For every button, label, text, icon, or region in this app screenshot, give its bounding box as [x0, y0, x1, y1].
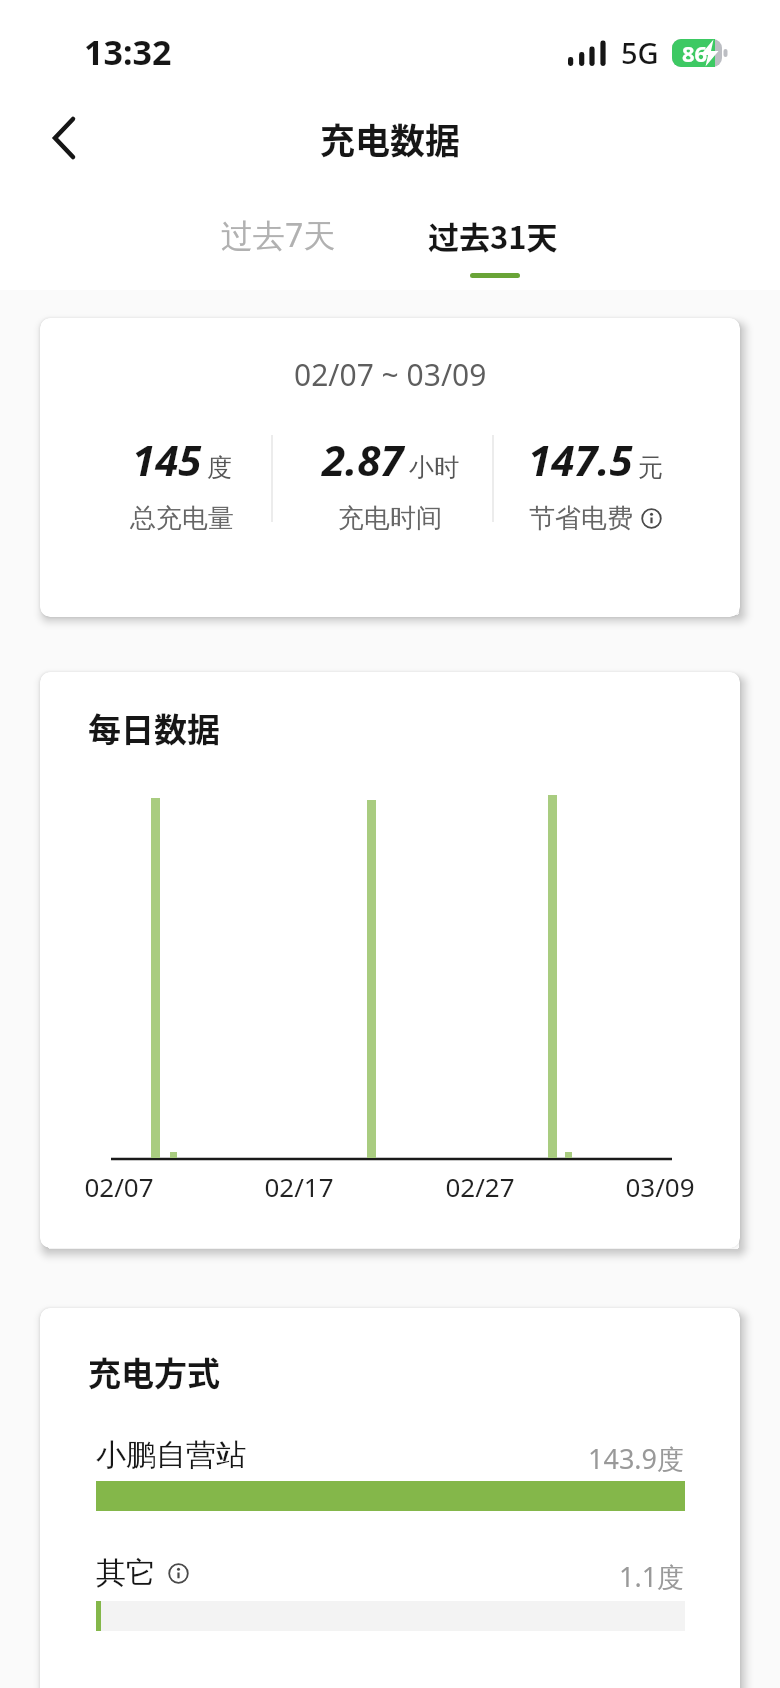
button[interactable] — [38, 112, 90, 164]
staticText: 02/07 ~ 03/09 — [294, 354, 487, 395]
staticText: 2.87 — [322, 431, 404, 488]
staticText: 02/17 — [259, 1169, 339, 1204]
staticText: 小时 — [409, 452, 459, 483]
staticText: 度 — [207, 452, 232, 483]
staticText: 其它 — [96, 1554, 156, 1592]
staticText: 小鹏自营站 — [96, 1436, 246, 1474]
staticText: 充电数据 — [320, 113, 461, 164]
staticText: 过去7天 — [221, 213, 336, 257]
staticText: 元 — [638, 452, 663, 483]
staticText: 02/27 — [440, 1169, 520, 1204]
staticText: 02/07 — [79, 1169, 159, 1204]
staticText: 147.5 — [528, 431, 633, 488]
staticText: 每日数据 — [88, 704, 220, 752]
staticText: 总充电量 — [130, 502, 234, 535]
staticText: 过去31天 — [428, 213, 558, 258]
staticText: 145 — [132, 431, 202, 488]
staticText: 节省电费 — [529, 502, 633, 535]
staticText: 86 — [682, 38, 708, 68]
button[interactable]: 过去7天 — [213, 205, 344, 265]
staticText: 13:32 — [84, 29, 172, 75]
staticText: 03/09 — [620, 1169, 700, 1204]
staticText: 5G — [621, 33, 659, 72]
staticText: 143.9度 — [588, 1440, 685, 1477]
staticText: 1.1度 — [619, 1558, 685, 1595]
staticText: 充电方式 — [88, 1348, 220, 1396]
button[interactable]: 过去31天 — [420, 205, 566, 266]
staticText: 充电时间 — [338, 502, 442, 535]
